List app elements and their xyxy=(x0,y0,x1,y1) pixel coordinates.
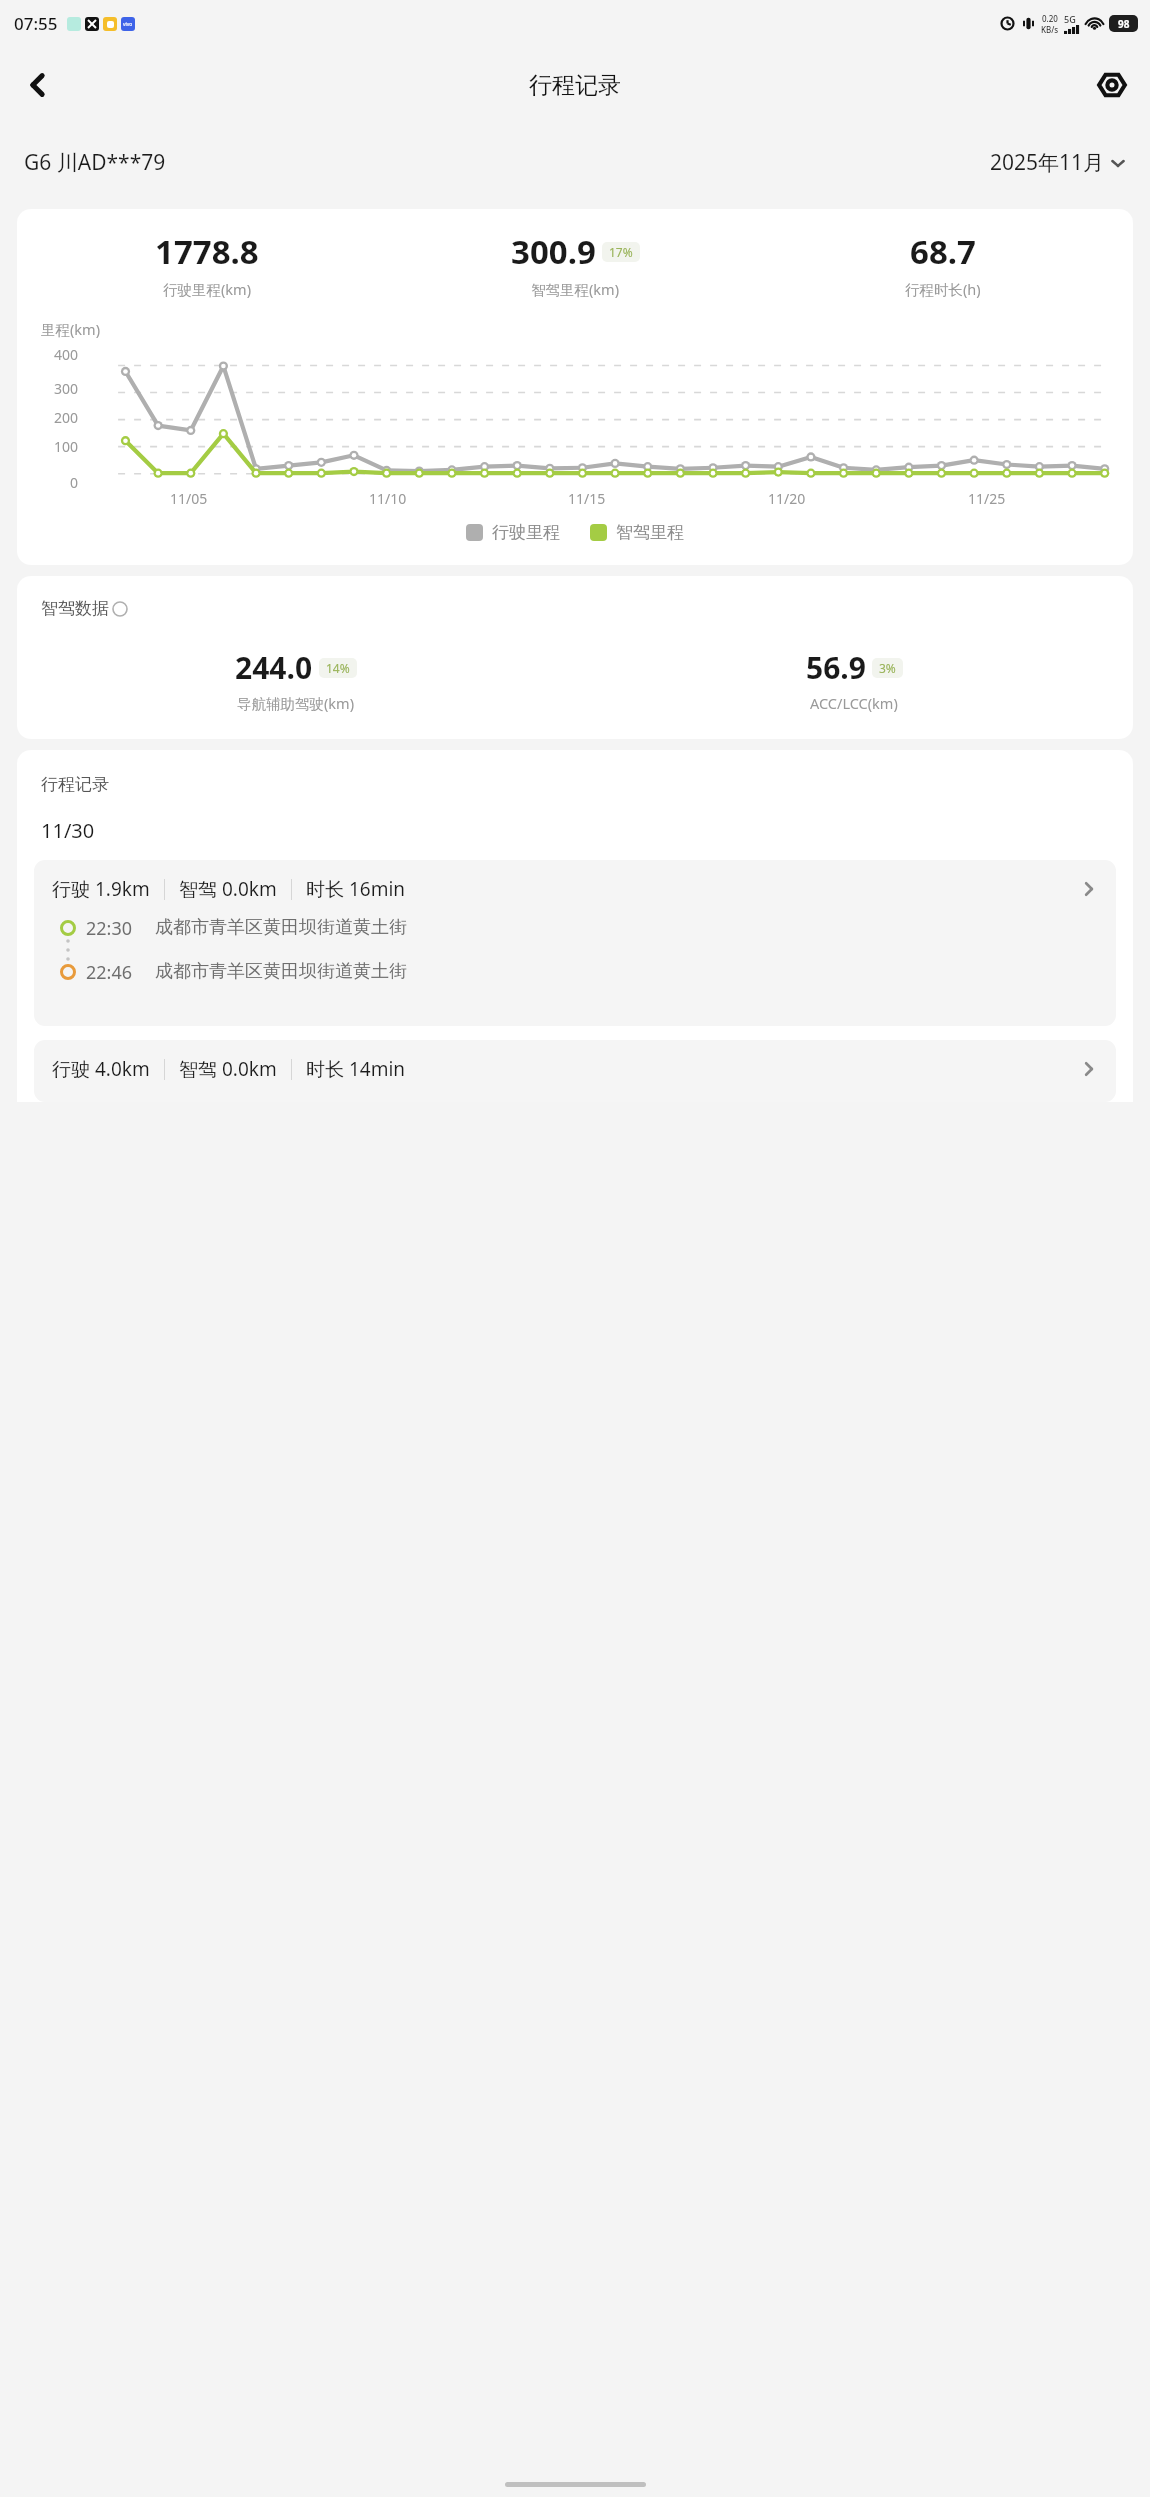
staticText: 56.9 xyxy=(806,647,866,688)
staticText: 行驶里程(km) xyxy=(163,279,252,299)
staticText: 智驾里程 xyxy=(616,522,684,543)
staticText: 98 xyxy=(1118,17,1130,31)
staticText: 22:30 xyxy=(86,916,133,941)
staticText: 行驶 1.9km xyxy=(52,876,150,902)
staticText: 时长 14min xyxy=(306,1056,406,1082)
staticText: 0 xyxy=(70,473,79,492)
staticText: 244.0 xyxy=(235,647,313,688)
staticText: 1778.8 xyxy=(155,229,259,274)
button[interactable]: 行驶 4.0km xyxy=(34,1040,1116,1102)
staticText: 68.7 xyxy=(910,229,976,274)
staticText: 400 xyxy=(54,345,79,364)
staticText: 07:55 xyxy=(14,12,58,35)
staticText: 行程时长(h) xyxy=(905,279,981,299)
staticText: 11/20 xyxy=(768,489,806,508)
staticText: 11/10 xyxy=(369,489,407,508)
staticText: 2025年11月 xyxy=(990,148,1105,177)
staticText: 行驶里程 xyxy=(492,522,560,543)
staticText: 行程记录 xyxy=(41,774,109,795)
staticText: 行程记录 xyxy=(529,71,621,100)
staticText: 14% xyxy=(326,660,350,676)
staticText: 11/30 xyxy=(41,817,95,844)
staticText: 智驾里程(km) xyxy=(531,279,620,299)
staticText: G6 川AD***79 xyxy=(24,148,166,177)
button[interactable]: 智驾数据 xyxy=(41,598,128,619)
staticText: 5G xyxy=(1064,13,1076,25)
staticText: 100 xyxy=(54,437,79,456)
staticText: 17% xyxy=(609,244,633,260)
staticText: 智驾 0.0km xyxy=(179,876,277,902)
staticText: 里程(km) xyxy=(41,319,101,339)
staticText: 11/05 xyxy=(170,489,208,508)
staticText: 行驶 4.0km xyxy=(52,1056,150,1082)
staticText: ACC/LCC(km) xyxy=(810,693,898,713)
staticText: 300.9 xyxy=(511,229,596,274)
staticText: 0.20 xyxy=(1042,13,1058,24)
staticText: 11/15 xyxy=(568,489,606,508)
button[interactable]: 返回 xyxy=(12,59,64,111)
staticText: 成都市青羊区黄田坝街道黄土街 xyxy=(155,960,407,983)
staticText: 3% xyxy=(879,660,896,676)
staticText: 智驾数据 xyxy=(41,598,109,619)
button[interactable]: 2025年11月 xyxy=(990,148,1126,177)
staticText: vivo xyxy=(123,21,133,28)
staticText: 导航辅助驾驶(km) xyxy=(237,693,355,713)
staticText: 成都市青羊区黄田坝街道黄土街 xyxy=(155,916,407,939)
staticText: 11/25 xyxy=(968,489,1006,508)
button[interactable]: 行驶 1.9km xyxy=(34,860,1116,1026)
staticText: 时长 16min xyxy=(306,876,406,902)
staticText: 200 xyxy=(54,408,79,427)
staticText: 智驾 0.0km xyxy=(179,1056,277,1082)
button[interactable]: 设置 xyxy=(1086,59,1138,111)
staticText: 300 xyxy=(54,379,79,398)
staticText: 22:46 xyxy=(86,960,133,985)
staticText: KB/s xyxy=(1041,24,1059,35)
